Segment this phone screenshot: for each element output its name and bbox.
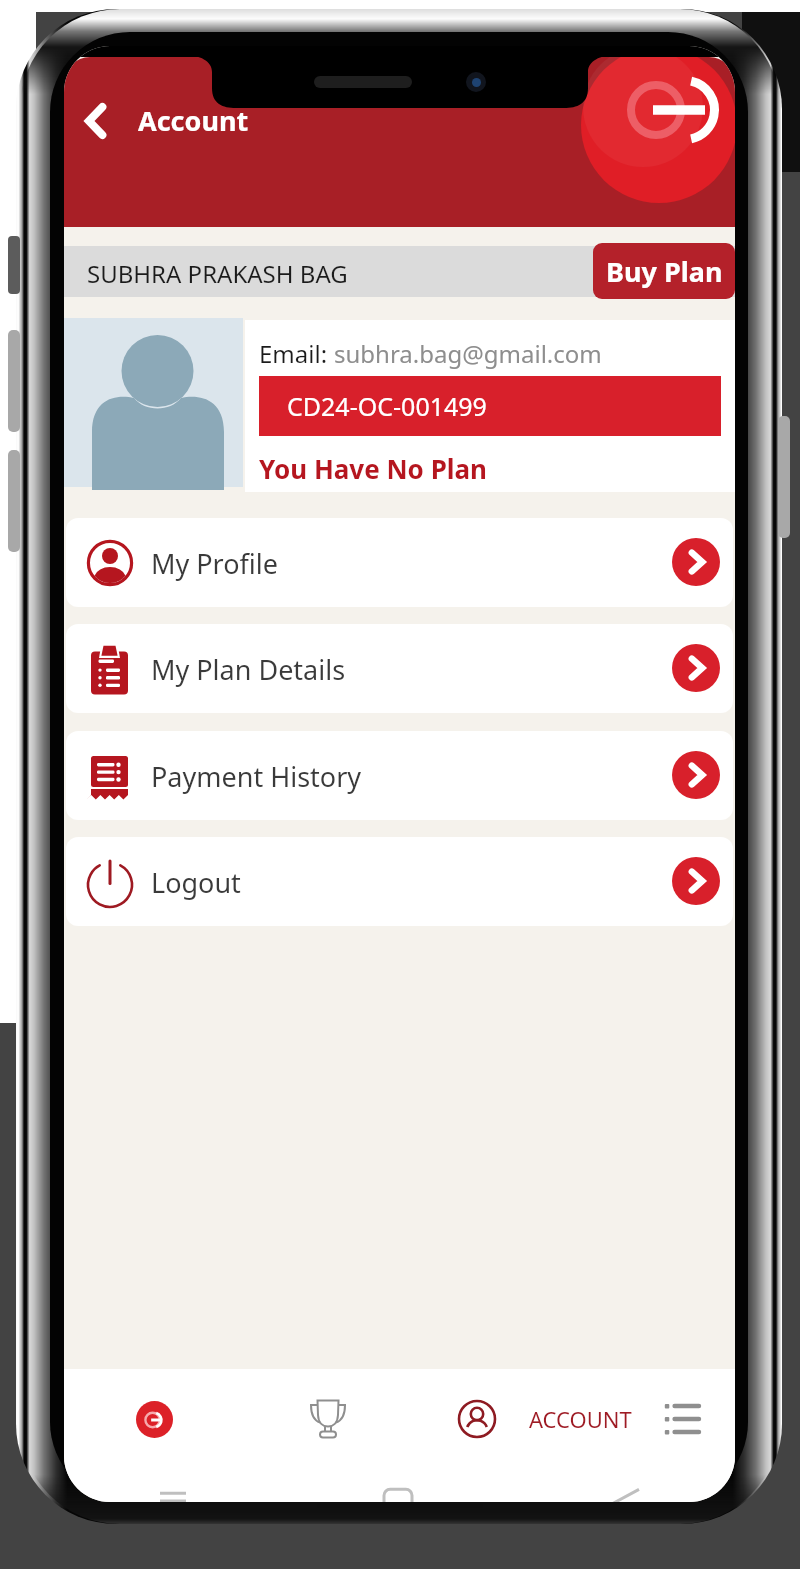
staticText: My Plan Details [151,651,346,688]
button[interactable]: Buy Plan [593,243,735,299]
staticText: You Have No Plan [259,451,487,486]
staticText: Email: [259,337,334,370]
staticText: Buy Plan [606,253,723,290]
button[interactable]: Logout [66,837,733,926]
button[interactable]: Payment History [66,731,733,820]
staticText: subhra.bag@gmail.com [334,337,602,370]
button[interactable]: Rewards [302,1393,354,1445]
staticText: Logout [151,864,241,901]
staticText: ACCOUNT [529,1404,632,1434]
staticText: My Profile [151,545,279,582]
button[interactable]: App logo [581,57,735,203]
button[interactable]: ACCOUNT [455,1393,632,1445]
button[interactable]: My Profile [66,518,733,607]
staticText: Account [138,102,249,139]
button[interactable]: My Plan Details [66,624,733,713]
button[interactable]: Home [136,1401,173,1438]
staticText: CD24-OC-001499 [287,389,487,423]
staticText: SUBHRA PRAKASH BAG [87,257,348,290]
button[interactable]: Menu [656,1393,708,1445]
staticText: Payment History [151,758,362,795]
button[interactable]: Back [72,97,120,145]
